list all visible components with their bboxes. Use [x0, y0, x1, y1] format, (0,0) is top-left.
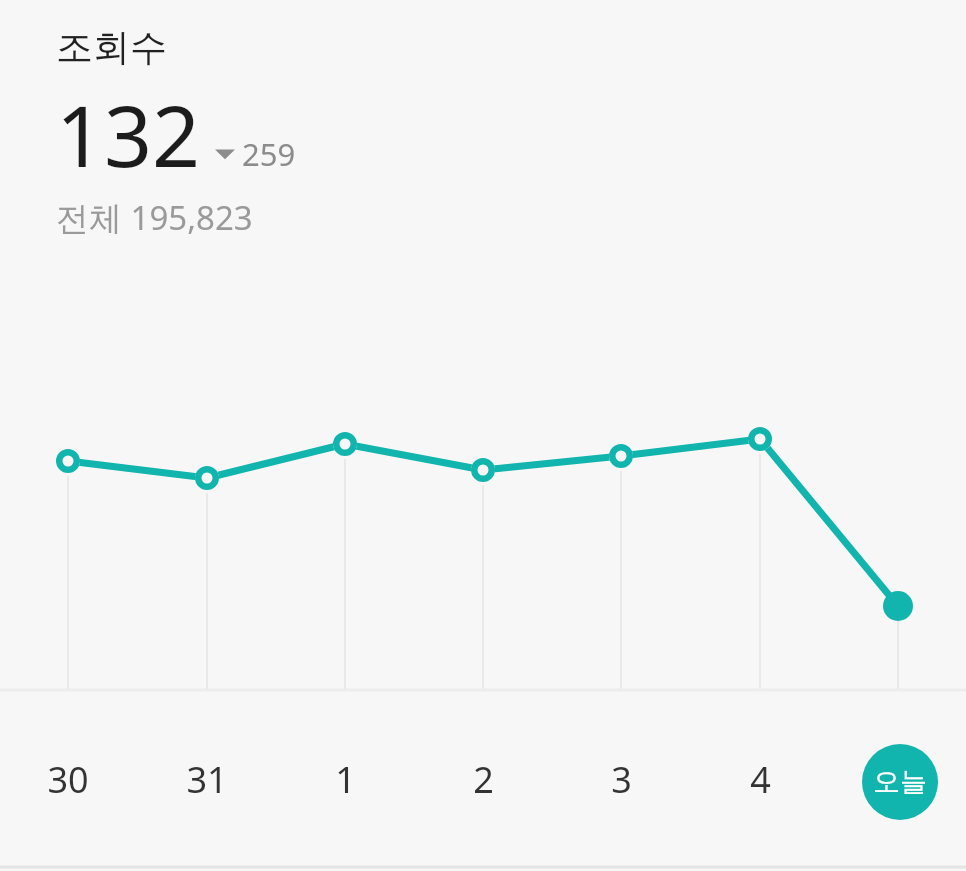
staticText: 조회수 — [56, 24, 167, 71]
staticText: 259 — [242, 133, 296, 175]
button[interactable]: 30 — [30, 748, 106, 810]
button[interactable]: 오늘 — [862, 744, 938, 820]
staticText: 30 — [47, 755, 89, 804]
staticText: 1 — [335, 755, 356, 804]
button[interactable]: 1 — [307, 748, 383, 810]
staticText: 오늘 — [873, 765, 927, 799]
staticText: 31 — [186, 755, 228, 804]
staticText: 3 — [611, 755, 632, 804]
staticText: 2 — [473, 755, 494, 804]
staticText: 4 — [750, 755, 771, 804]
button[interactable]: 2 — [445, 748, 521, 810]
button[interactable]: 31 — [169, 748, 245, 810]
button[interactable]: 4 — [722, 748, 798, 810]
staticText: 전체 195,823 — [56, 195, 253, 240]
staticText: 132 — [56, 77, 201, 191]
button[interactable]: 3 — [583, 748, 659, 810]
